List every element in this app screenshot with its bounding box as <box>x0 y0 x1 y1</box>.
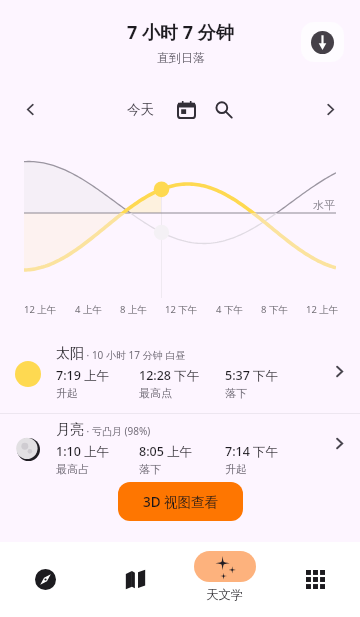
staticText: 最高占 <box>56 462 89 476</box>
staticText: 落下 <box>139 462 161 476</box>
staticText: · 10 小时 17 分钟 白昼 <box>84 348 186 362</box>
button[interactable]: 今天 <box>123 95 158 124</box>
staticText: · 亏凸月 (98%) <box>84 424 151 438</box>
staticText: 4 上午 <box>75 303 102 316</box>
staticText: 5:37 下午 <box>225 367 279 384</box>
staticText: 直到日落 <box>157 50 205 65</box>
button[interactable]: 天文学 <box>193 551 256 603</box>
staticText: 1:10 上午 <box>56 443 110 460</box>
staticText: 12 下午 <box>165 303 198 316</box>
staticText: 8:05 上午 <box>139 443 193 460</box>
button[interactable]: Compass <box>14 548 76 610</box>
button[interactable]: 太阳 <box>0 334 360 413</box>
staticText: 最高点 <box>139 386 172 400</box>
staticText: 月亮 <box>56 421 84 439</box>
staticText: 12 上午 <box>24 303 57 316</box>
staticText: 7:14 下午 <box>225 443 279 460</box>
staticText: 4 下午 <box>216 303 243 316</box>
staticText: 天文学 <box>206 587 244 603</box>
button[interactable]: Previous day <box>12 91 48 127</box>
staticText: 8 上午 <box>120 303 147 316</box>
button[interactable]: Download <box>301 22 344 62</box>
staticText: 今天 <box>127 101 154 118</box>
staticText: 水平 <box>313 198 335 212</box>
staticText: 12:28 下午 <box>139 367 200 384</box>
button[interactable]: Calendar <box>173 97 199 123</box>
staticText: 7:19 上午 <box>56 367 110 384</box>
staticText: 升起 <box>56 386 78 400</box>
staticText: 3D 视图查看 <box>143 493 219 511</box>
staticText: 7 小时 7 分钟 <box>127 20 234 45</box>
button[interactable]: Search <box>211 97 237 123</box>
staticText: 8 下午 <box>261 303 288 316</box>
staticText: 落下 <box>225 386 247 400</box>
button[interactable]: Map <box>104 548 166 610</box>
button[interactable]: 月亮 <box>0 410 360 476</box>
staticText: 太阳 <box>56 345 84 363</box>
button[interactable]: Next day <box>312 91 348 127</box>
button[interactable]: Apps <box>284 548 346 610</box>
staticText: 升起 <box>225 462 247 476</box>
staticText: 12 上午 <box>306 303 339 316</box>
button[interactable]: 3D 视图查看 <box>118 482 243 521</box>
